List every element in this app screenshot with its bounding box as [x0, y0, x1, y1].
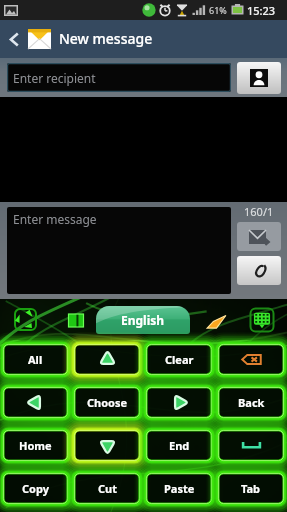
- button[interactable]: Enter recipient: [7, 63, 231, 92]
- button[interactable]: All: [0, 341, 71, 378]
- button[interactable]: Copy: [0, 470, 71, 507]
- other: space: [241, 435, 262, 456]
- staticText: Tab: [241, 481, 261, 496]
- staticText: 61%: [209, 4, 227, 16]
- staticText: All: [28, 352, 43, 367]
- button[interactable]: Send: [237, 222, 281, 251]
- staticText: Clear: [165, 352, 194, 367]
- other: down: [97, 435, 118, 456]
- staticText: Paste: [164, 481, 195, 496]
- staticText: 15:23: [247, 3, 276, 18]
- button[interactable]: Add contact: [237, 62, 281, 94]
- button[interactable]: up: [71, 341, 143, 378]
- button[interactable]: Clear: [143, 341, 215, 378]
- button[interactable]: Tab: [215, 470, 287, 507]
- button[interactable]: End: [143, 427, 215, 464]
- other: back: [241, 349, 262, 370]
- button[interactable]: right: [143, 384, 215, 421]
- staticText: Home: [19, 438, 52, 453]
- staticText: New message: [59, 29, 153, 48]
- button[interactable]: Cut: [71, 470, 143, 507]
- other: up: [97, 349, 118, 370]
- button[interactable]: Paste: [143, 470, 215, 507]
- button[interactable]: back: [215, 341, 287, 378]
- button[interactable]: Enter message: [7, 207, 231, 294]
- staticText: 160/1: [244, 204, 274, 219]
- staticText: Back: [238, 395, 265, 410]
- button[interactable]: space: [215, 427, 287, 464]
- staticText: Enter recipient: [13, 70, 96, 86]
- staticText: Copy: [22, 481, 49, 496]
- button[interactable]: Back: [215, 384, 287, 421]
- staticText: Cut: [98, 481, 117, 496]
- other: left: [25, 392, 46, 413]
- button[interactable]: Choose: [71, 384, 143, 421]
- button[interactable]: Back: [4, 29, 24, 49]
- staticText: Enter message: [13, 211, 97, 227]
- button[interactable]: down: [71, 427, 143, 464]
- button[interactable]: Keyboard: [248, 306, 275, 333]
- button[interactable]: Input mode: [66, 310, 86, 330]
- other: right: [169, 392, 190, 413]
- button[interactable]: Settings: [13, 307, 37, 331]
- button[interactable]: Handwriting: [203, 308, 228, 333]
- button[interactable]: English: [96, 306, 190, 334]
- staticText: English: [121, 312, 165, 328]
- button[interactable]: left: [0, 384, 71, 421]
- staticText: End: [169, 438, 190, 453]
- staticText: Choose: [87, 395, 128, 410]
- button[interactable]: Attach: [237, 256, 281, 285]
- button[interactable]: Home: [0, 427, 71, 464]
